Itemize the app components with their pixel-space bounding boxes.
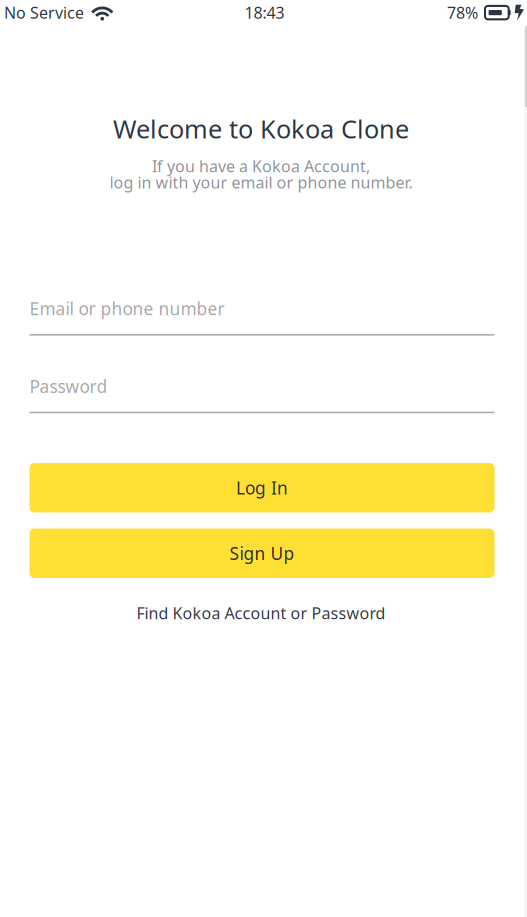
staticText: 78% [447, 2, 478, 23]
button[interactable]: Log In [29, 463, 494, 512]
button[interactable]: Find Kokoa Account or Password [136, 602, 385, 624]
staticText: Email or phone number [29, 297, 224, 320]
staticText: Log In [236, 476, 288, 499]
button[interactable]: Email or phone number [29, 297, 494, 336]
button[interactable]: Password [29, 375, 494, 413]
staticText: Welcome to Kokoa Clone [113, 112, 409, 145]
button[interactable]: Sign Up [29, 529, 494, 578]
staticText: log in with your email or phone number. [109, 172, 412, 193]
staticText: Password [29, 375, 107, 398]
staticText: 18:43 [244, 2, 284, 23]
staticText: Sign Up [229, 542, 294, 565]
staticText: No Service [4, 2, 84, 23]
staticText: If you have a Kokoa Account, [152, 155, 370, 177]
staticText: Find Kokoa Account or Password [136, 602, 385, 624]
